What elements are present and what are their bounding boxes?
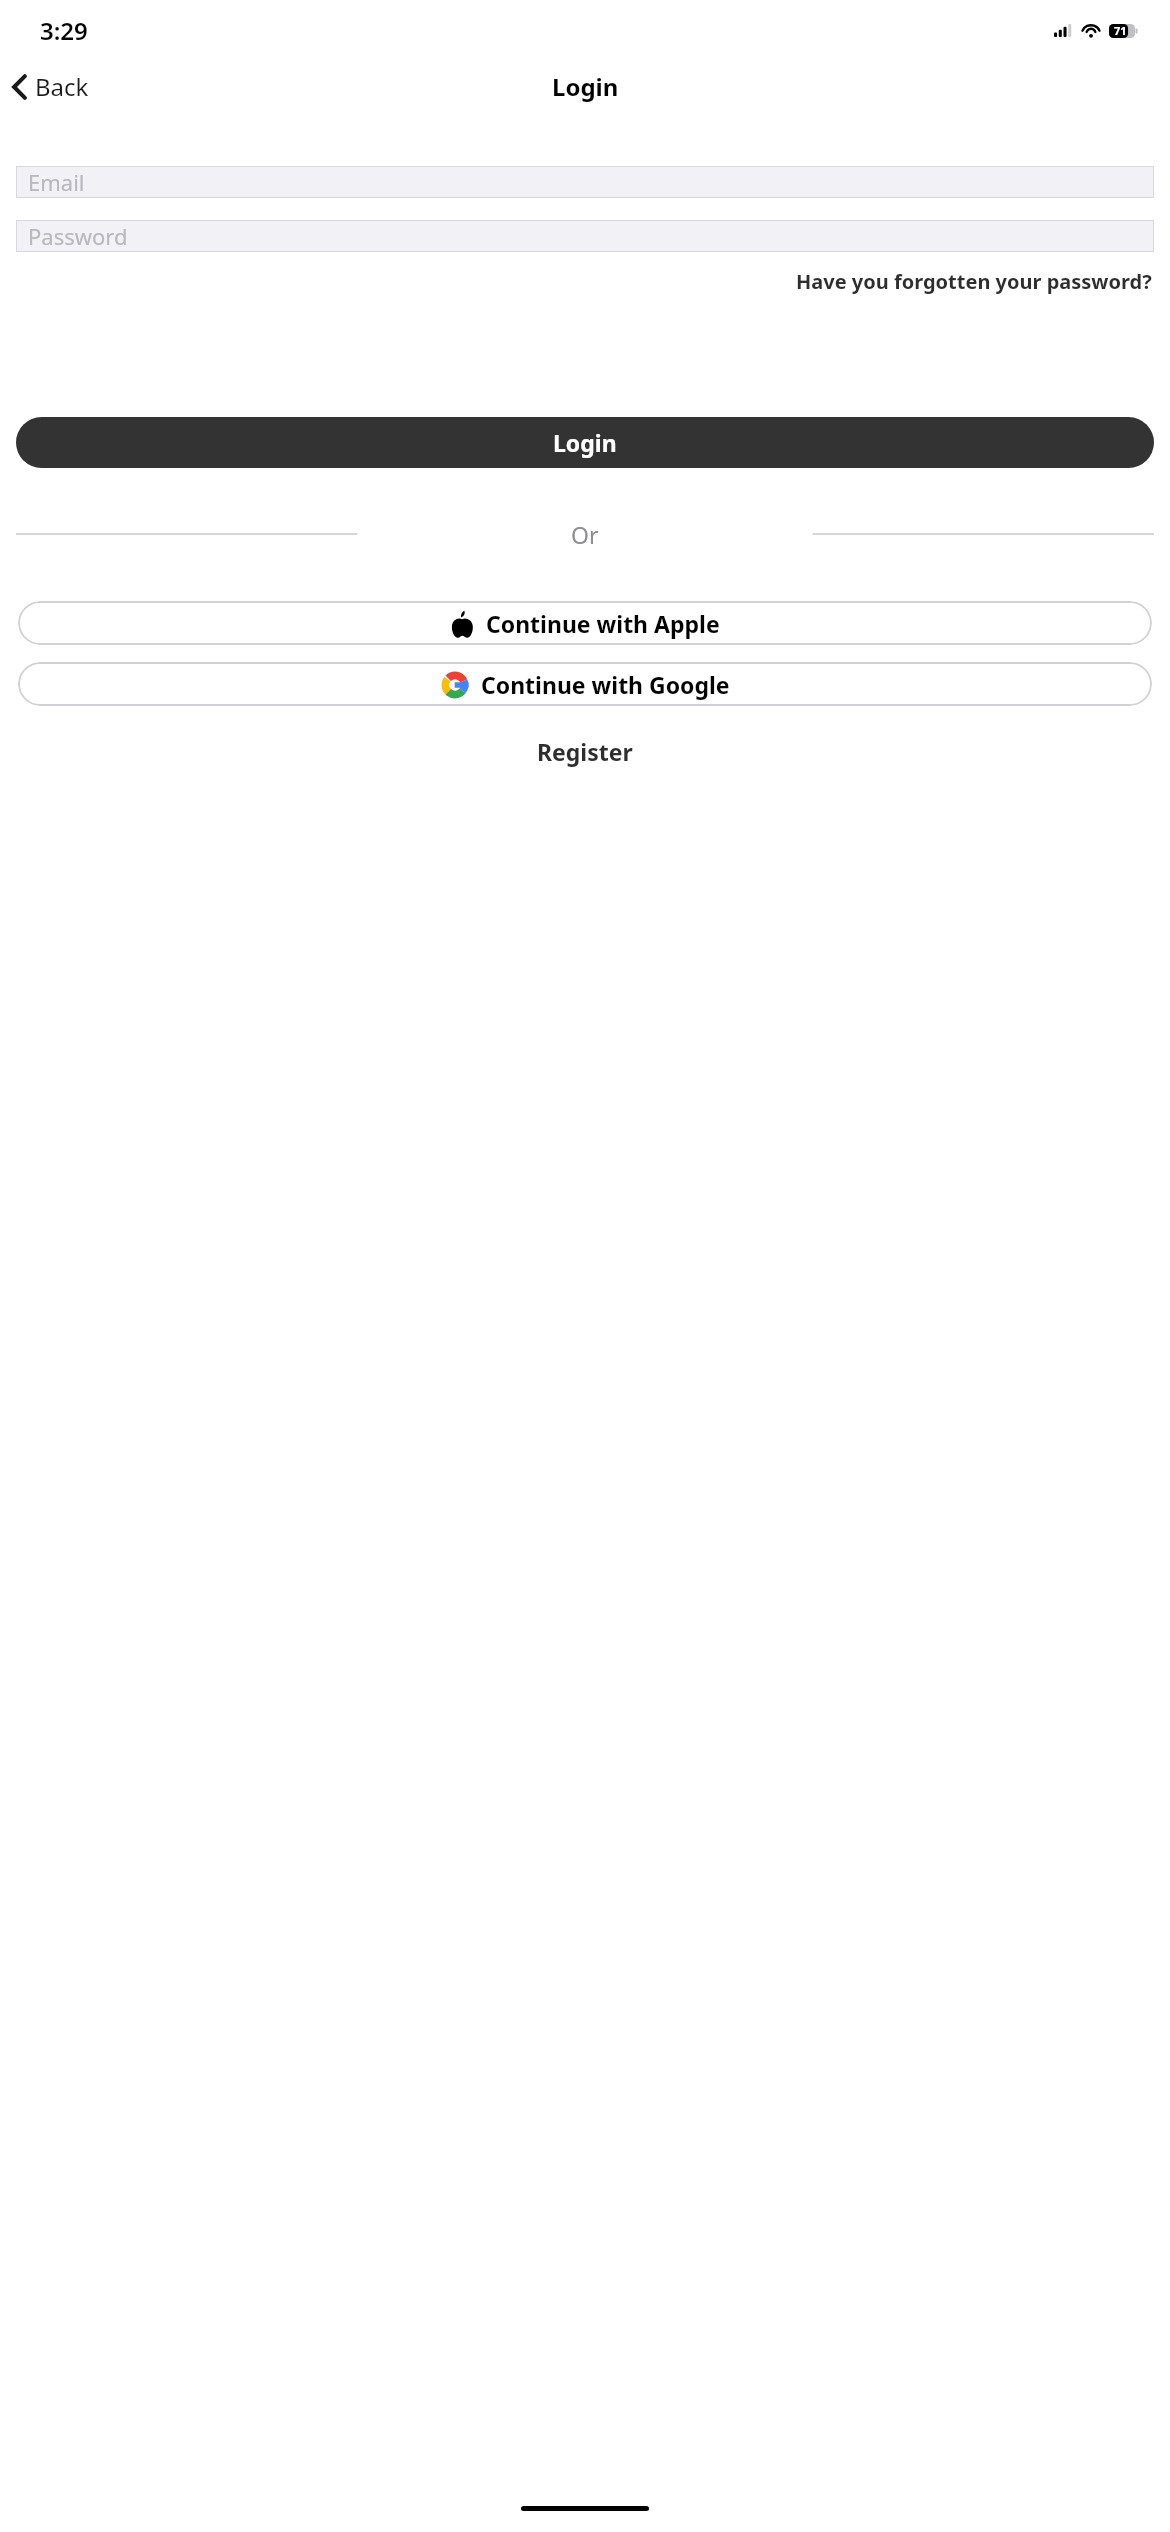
staticText: 71 [1114, 23, 1127, 38]
staticText: Back [35, 70, 89, 103]
other: Back [12, 74, 27, 100]
staticText: Register [537, 736, 633, 767]
button[interactable]: Have you forgotten your password? [794, 264, 1154, 299]
staticText: Login [552, 70, 619, 103]
button[interactable]: Continue with Google [18, 662, 1152, 706]
staticText: Password [28, 221, 128, 251]
staticText: Have you forgotten your password? [796, 268, 1152, 295]
staticText: 3:29 [40, 14, 88, 47]
staticText: Continue with Google [481, 669, 730, 700]
button[interactable]: Email [16, 166, 1154, 198]
staticText: Or [571, 519, 599, 549]
button[interactable]: Register [521, 728, 649, 775]
button[interactable]: Password [16, 220, 1154, 252]
staticText: Login [553, 427, 617, 458]
staticText: Email [28, 167, 85, 197]
button[interactable]: Back [6, 66, 99, 107]
button[interactable]: Continue with Apple [18, 601, 1152, 645]
staticText: Continue with Apple [486, 608, 720, 639]
button[interactable]: Login [16, 417, 1154, 468]
